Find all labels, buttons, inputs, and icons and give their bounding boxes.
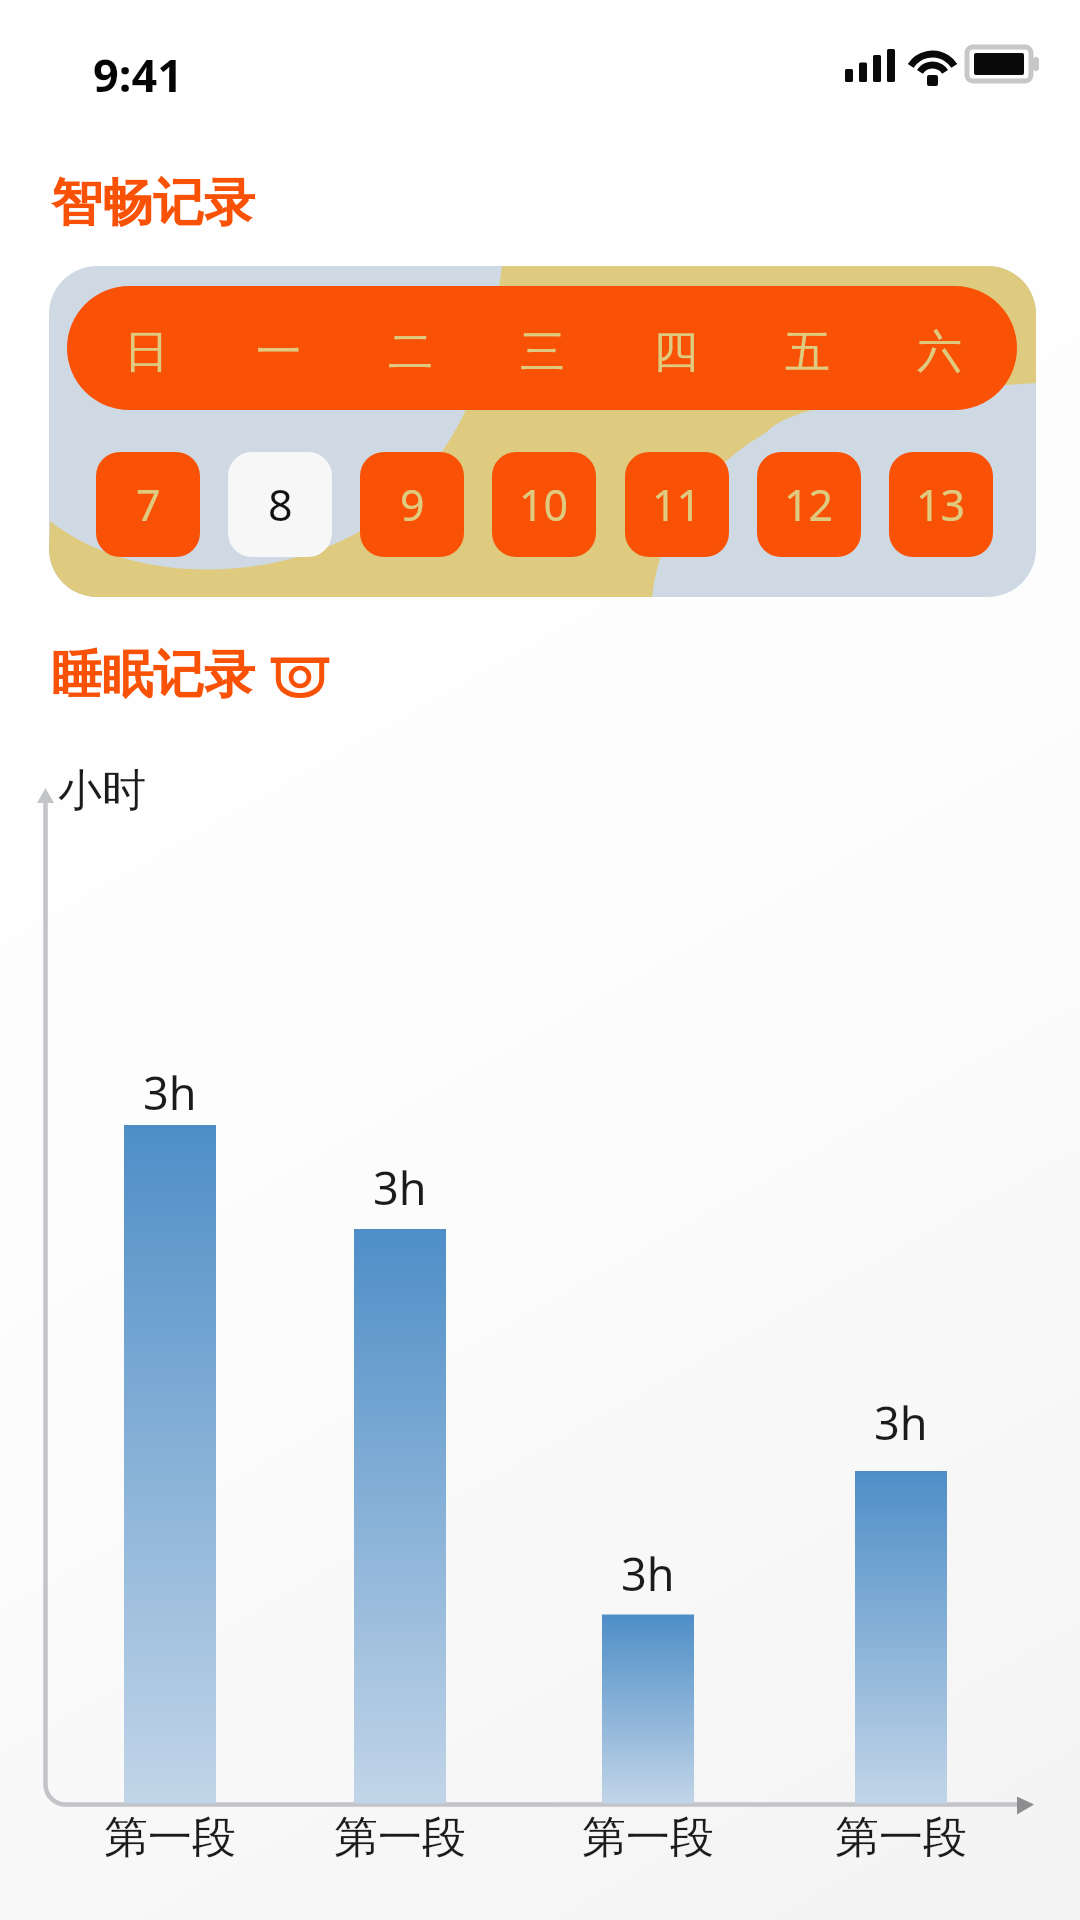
staticText: 睡眠记录 xyxy=(51,643,255,707)
staticText: 11 xyxy=(652,475,702,534)
staticText: 第一段 xyxy=(582,1810,714,1865)
button[interactable]: 五 xyxy=(746,286,868,410)
staticText: 3h xyxy=(373,1157,427,1218)
staticText: 12 xyxy=(784,475,834,534)
staticText: 第一段 xyxy=(334,1810,466,1865)
button[interactable]: 一 xyxy=(217,286,339,410)
button[interactable]: 三 xyxy=(481,286,603,410)
staticText: 日 xyxy=(124,324,169,381)
button[interactable]: Sleep monitor camera xyxy=(270,655,330,703)
staticText: 一 xyxy=(256,324,301,381)
staticText: 智畅记录 xyxy=(51,171,255,235)
button[interactable]: 13 xyxy=(889,452,993,557)
staticText: 7 xyxy=(136,475,161,534)
staticText: 3h xyxy=(874,1392,928,1453)
staticText: 四 xyxy=(653,324,698,381)
staticText: 第一段 xyxy=(835,1810,967,1865)
button[interactable]: 12 xyxy=(757,452,861,557)
button[interactable]: 11 xyxy=(625,452,729,557)
button[interactable]: 日 xyxy=(85,286,207,410)
staticText: 三 xyxy=(520,324,565,381)
staticText: 3h xyxy=(143,1062,197,1123)
button[interactable]: 9 xyxy=(360,452,464,557)
staticText: 8 xyxy=(268,475,293,534)
staticText: 10 xyxy=(519,475,569,534)
staticText: 五 xyxy=(785,324,830,381)
button[interactable]: 8 xyxy=(228,452,332,557)
staticText: 9 xyxy=(400,475,425,534)
staticText: 二 xyxy=(388,324,433,381)
button[interactable]: 10 xyxy=(492,452,596,557)
staticText: 9:41 xyxy=(93,44,183,105)
staticText: 3h xyxy=(621,1543,675,1604)
button[interactable]: 7 xyxy=(96,452,200,557)
staticText: 六 xyxy=(917,324,962,381)
button[interactable]: 四 xyxy=(614,286,736,410)
staticText: 第一段 xyxy=(104,1810,236,1865)
staticText: 小时 xyxy=(58,763,146,818)
staticText: 13 xyxy=(916,475,966,534)
button[interactable]: 二 xyxy=(349,286,471,410)
button[interactable]: 六 xyxy=(878,286,1000,410)
